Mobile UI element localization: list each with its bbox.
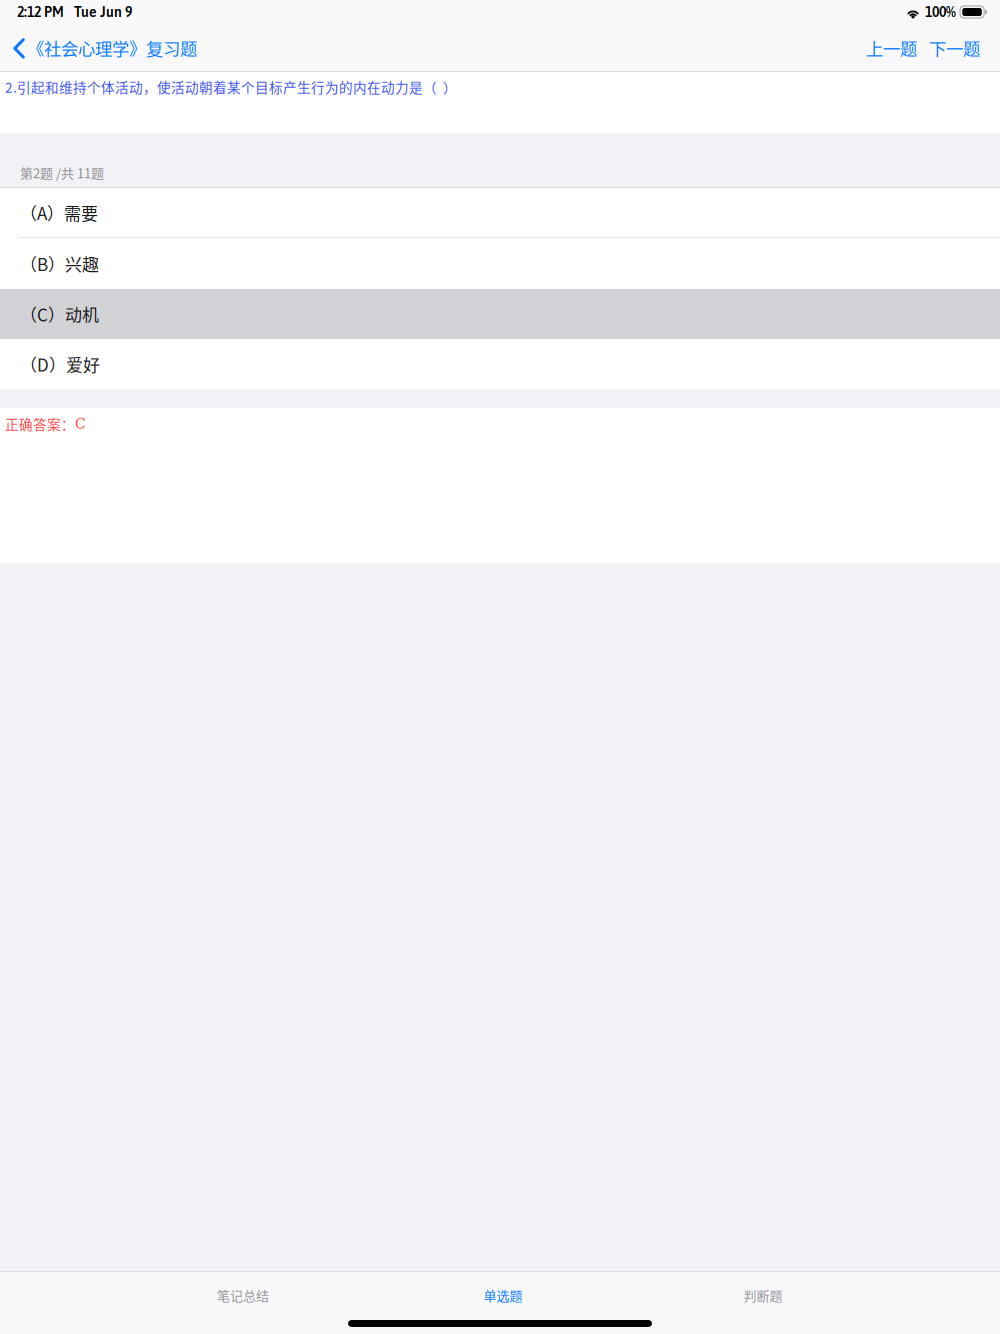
staticText: 2:12 PM [17,4,64,20]
staticText: 正确答案： [5,414,75,434]
staticText: （D）爱好 [20,352,100,376]
staticText: 第2题 /共 11题 [20,163,104,182]
button[interactable]: 上一题 [860,27,923,69]
staticText: Tue Jun 9 [74,4,132,20]
button[interactable]: （B）兴趣 [0,238,1000,289]
button[interactable]: （C）动机 [0,289,1000,339]
staticText: 上一题 [866,35,917,61]
staticText: 下一题 [929,35,980,61]
staticText: （B）兴趣 [20,251,99,276]
button[interactable]: （D）爱好 [0,339,1000,389]
staticText: 《社会心理学》复习题 [27,35,197,61]
button[interactable]: 《社会心理学》复习题 [0,27,205,69]
button[interactable]: （A）需要 [0,188,1000,238]
button[interactable]: 下一题 [923,27,986,69]
button[interactable]: 判断题 [633,1271,893,1319]
staticText: 笔记总结 [217,1286,269,1304]
staticText: （C）动机 [20,302,99,326]
button[interactable]: 单选题 [373,1271,633,1319]
staticText: （A）需要 [20,200,98,225]
staticText: 判断题 [743,1286,782,1304]
button[interactable]: 笔记总结 [113,1271,373,1319]
staticText: 100% [925,4,956,20]
staticText: C [75,416,86,432]
staticText: 单选题 [483,1286,522,1304]
staticText: 2.引起和维持个体活动，使活动朝着某个目标产生行为的内在动力是（ ） [5,77,457,97]
